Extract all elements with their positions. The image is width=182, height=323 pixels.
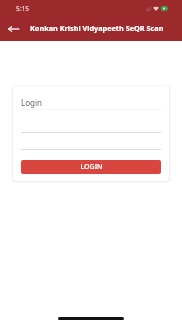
- button[interactable]: Back: [3, 18, 23, 38]
- button[interactable]: LOGIN: [21, 160, 161, 174]
- staticText: LOGIN: [80, 162, 103, 172]
- staticText: 5:15: [16, 4, 30, 13]
- staticText: Konkan Krishi Vidyapeeth SeQR Scan: [30, 23, 164, 33]
- staticText: Login: [21, 97, 42, 108]
